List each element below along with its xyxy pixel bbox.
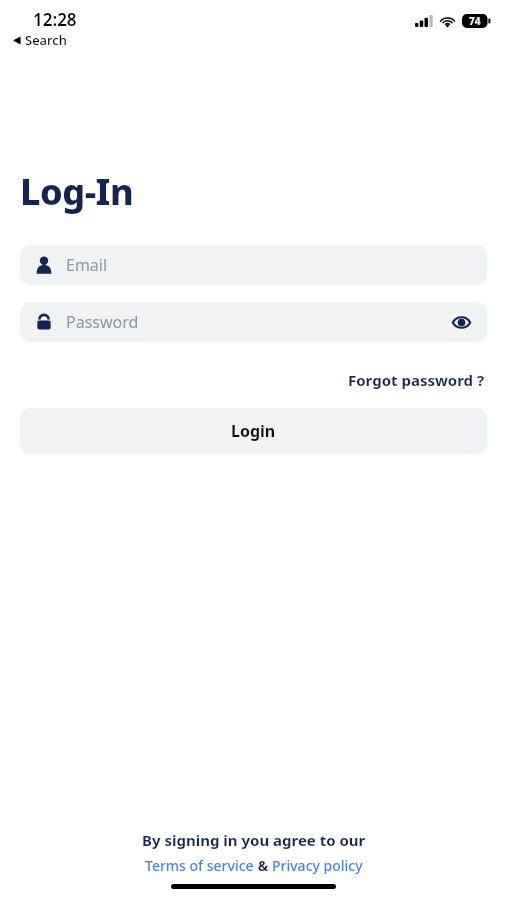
button[interactable]: Forgot password ? <box>346 367 487 393</box>
button[interactable]: Email <box>20 245 487 285</box>
staticText: Login <box>231 420 276 442</box>
button[interactable]: Search <box>12 31 67 49</box>
staticText: Privacy policy <box>272 856 363 875</box>
staticText: & <box>254 856 272 875</box>
staticText: 74 <box>469 14 481 28</box>
staticText: By signing in you agree to our <box>142 830 366 850</box>
button[interactable]: Terms of service <box>145 856 254 875</box>
staticText: Forgot password ? <box>348 370 485 390</box>
button[interactable]: Password <box>20 302 487 342</box>
staticText: Terms of service <box>145 856 254 875</box>
button[interactable]: Privacy policy <box>272 856 363 875</box>
staticText: Password <box>66 311 449 333</box>
staticText: Email <box>66 254 473 276</box>
button[interactable]: Login <box>20 408 487 454</box>
button[interactable]: Show password <box>449 310 473 334</box>
staticText: Search <box>25 31 67 49</box>
staticText: Log-In <box>20 167 134 216</box>
staticText: 12:28 <box>33 8 77 31</box>
